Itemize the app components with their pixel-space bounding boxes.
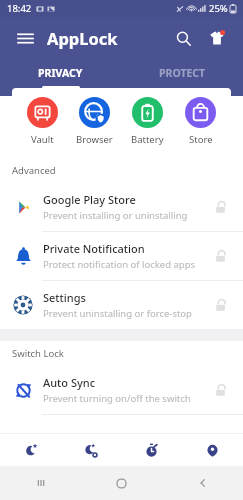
button[interactable]: Location [182, 434, 243, 466]
staticText: AppLock [47, 27, 118, 49]
button[interactable]: Timer [121, 434, 182, 466]
staticText: 18:42 [7, 2, 32, 15]
staticText: PROTECT [159, 66, 206, 80]
button[interactable]: PROTECT [121, 59, 243, 96]
staticText: Store [189, 133, 213, 146]
button[interactable]: Search [169, 24, 197, 52]
staticText: Switch Lock [12, 347, 64, 360]
staticText: Browser [76, 133, 113, 146]
button[interactable]: Toggle lock for Auto Sync [209, 379, 231, 401]
staticText: PRIVACY [38, 66, 83, 80]
button[interactable]: Vault [16, 88, 68, 155]
staticText: Auto Sync [43, 375, 96, 390]
staticText: Battery [131, 133, 164, 146]
button[interactable]: Sleep timer [60, 434, 121, 466]
button[interactable]: Google Play Store [0, 183, 243, 231]
staticText: Prevent uninstalling or force-stop [43, 307, 192, 320]
button[interactable]: Auto Sync [0, 366, 243, 414]
button[interactable]: Home [81, 466, 162, 500]
staticText: Settings [43, 290, 86, 305]
staticText: Prevent installing or uninstalling [43, 209, 188, 222]
staticText: Vault [31, 133, 54, 146]
button[interactable]: PRIVACY [0, 59, 121, 96]
button[interactable]: Battery [121, 88, 174, 155]
staticText: Prevent turning on/off the switch [43, 392, 191, 405]
staticText: Advanced [12, 164, 56, 177]
button[interactable]: Browser [68, 88, 121, 155]
button[interactable]: Private Notification [0, 232, 243, 280]
button[interactable]: Open navigation menu [12, 25, 38, 51]
button[interactable]: Store [174, 88, 227, 155]
button[interactable]: Back [162, 466, 243, 500]
button[interactable]: Night mode [0, 434, 60, 466]
button[interactable]: Toggle lock for Private Notification [209, 245, 231, 267]
button[interactable]: Recent apps [0, 466, 81, 500]
staticText: Google Play Store [43, 192, 136, 207]
button[interactable]: Toggle lock for Settings [209, 294, 231, 316]
button[interactable]: Settings [0, 281, 243, 329]
staticText: Private Notification [43, 241, 145, 256]
staticText: Protect notification of locked apps [43, 258, 196, 271]
button[interactable]: Themes store [203, 24, 231, 52]
staticText: 25% [209, 2, 228, 15]
button[interactable]: Toggle lock for Google Play Store [209, 196, 231, 218]
